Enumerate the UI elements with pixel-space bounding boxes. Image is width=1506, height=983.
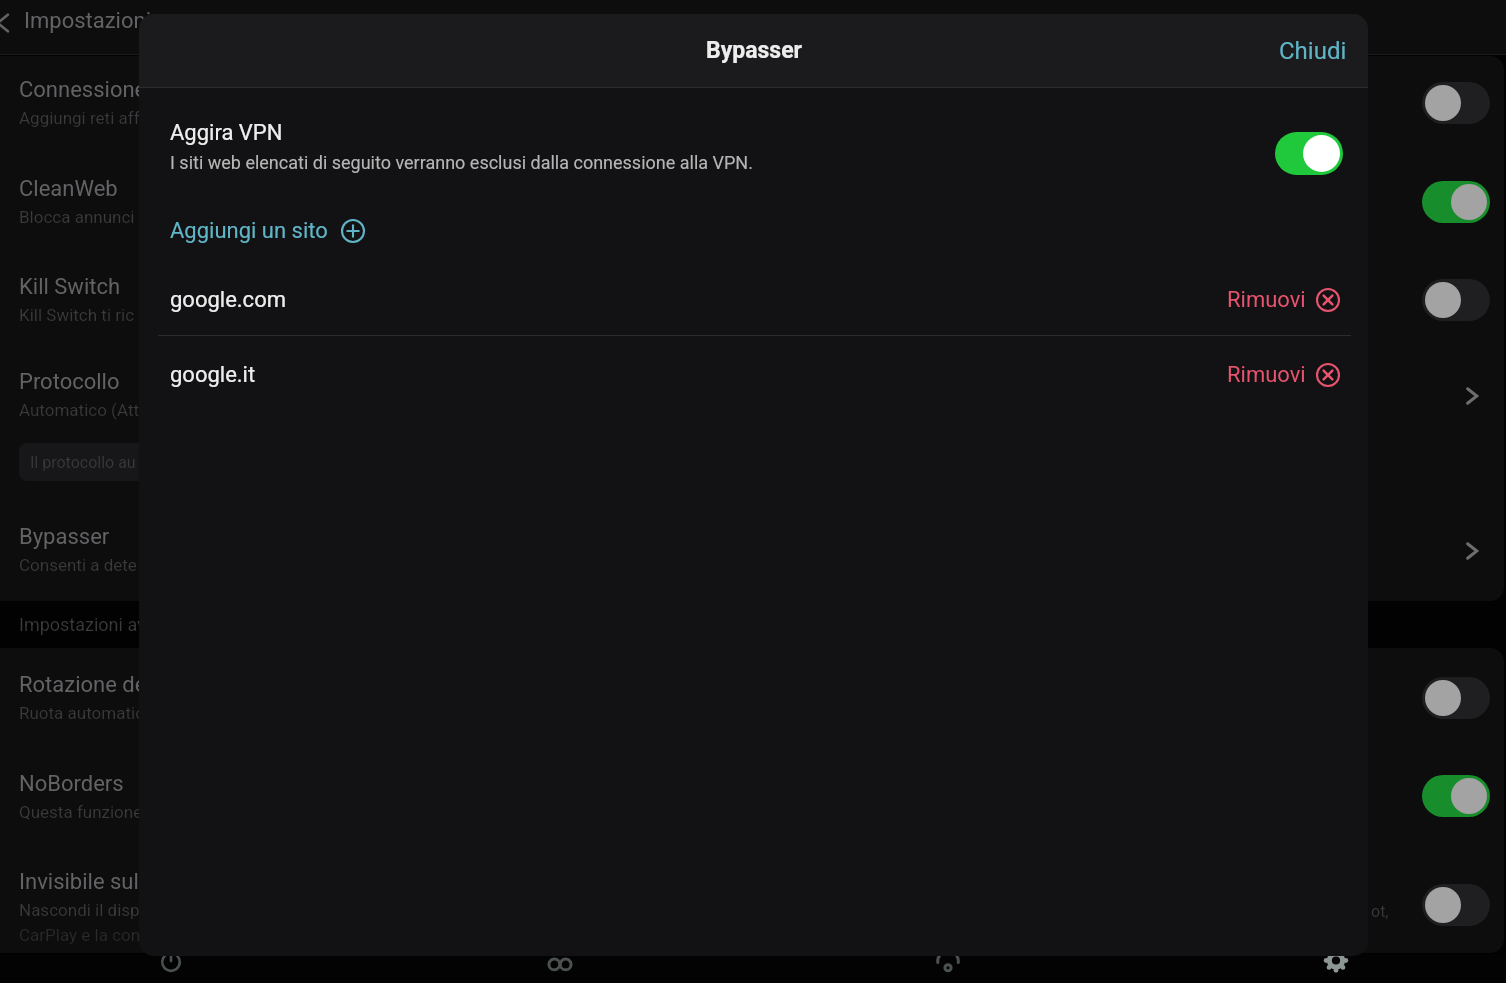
staticText: Aggira VPN xyxy=(170,120,283,146)
button[interactable]: Indietro xyxy=(0,8,18,38)
staticText: Bypasser xyxy=(706,37,802,64)
staticText: Automatico (Att xyxy=(19,400,140,420)
staticText: Impostazioni av xyxy=(19,614,319,635)
staticText: Chiudi xyxy=(1279,37,1347,65)
staticText: Protocollo xyxy=(19,369,120,395)
button[interactable]: Chiudi xyxy=(1266,29,1360,73)
staticText: Kill Switch xyxy=(19,274,121,300)
staticText: Rimuovi xyxy=(1227,362,1306,388)
staticText: Aggiungi un sito xyxy=(170,218,328,244)
button[interactable]: Protocollo xyxy=(19,369,419,420)
button[interactable]: Interruttore xyxy=(1422,82,1490,124)
button[interactable]: CleanWeb xyxy=(19,176,419,227)
staticText: NoBorders xyxy=(19,771,124,797)
staticText: CleanWeb xyxy=(19,176,118,202)
button[interactable]: Apri xyxy=(1452,531,1492,571)
staticText: ot, xyxy=(1371,902,1389,921)
staticText: Rimuovi xyxy=(1227,287,1306,313)
staticText: Connessione xyxy=(19,77,147,103)
button[interactable]: Bypasser xyxy=(19,524,419,575)
staticText: Kill Switch ti ric xyxy=(19,305,135,325)
staticText: Blocca annunci xyxy=(19,207,135,227)
button[interactable]: Account xyxy=(888,940,1008,983)
staticText: google.com xyxy=(170,287,286,313)
button[interactable]: google.it xyxy=(139,338,1368,411)
staticText: Nascondi il disp xyxy=(19,900,140,920)
staticText: Il protocollo au xyxy=(30,453,136,472)
staticText: google.it xyxy=(170,362,256,388)
staticText: CarPlay e la con xyxy=(19,925,319,945)
button[interactable]: Interruttore xyxy=(1422,775,1490,817)
staticText: Invisibile sull xyxy=(19,869,145,895)
staticText: Questa funzione xyxy=(19,802,143,822)
button[interactable]: Connessione xyxy=(19,77,419,128)
staticText: Bypasser xyxy=(19,524,110,550)
staticText: Rotazione de xyxy=(19,672,147,698)
staticText: Ruota automatic xyxy=(19,703,145,723)
button[interactable]: Aggira VPN xyxy=(1275,132,1343,175)
button[interactable]: google.com xyxy=(139,263,1368,336)
button[interactable]: NoBorders xyxy=(19,771,419,822)
button[interactable]: Connessione xyxy=(111,940,231,983)
button[interactable]: Impostazioni xyxy=(1276,940,1396,983)
staticText: Impostazioni xyxy=(24,8,152,34)
button[interactable]: Interruttore xyxy=(1422,884,1490,926)
button[interactable]: Kill Switch xyxy=(19,274,419,325)
button[interactable]: Interruttore xyxy=(1422,279,1490,321)
button[interactable]: Aggiungi un sito xyxy=(164,214,371,248)
button[interactable]: Interruttore xyxy=(1422,181,1490,223)
button[interactable]: Invisibile sull xyxy=(19,869,419,920)
button[interactable]: Rotazione de xyxy=(19,672,419,723)
button[interactable]: Dispositivi xyxy=(500,940,620,983)
staticText: I siti web elencati di seguito verranno … xyxy=(170,152,753,173)
button[interactable]: Interruttore xyxy=(1422,677,1490,719)
button[interactable]: Apri xyxy=(1452,376,1492,416)
staticText: Aggiungi reti aff xyxy=(19,108,140,128)
staticText: Consenti a dete xyxy=(19,555,137,575)
